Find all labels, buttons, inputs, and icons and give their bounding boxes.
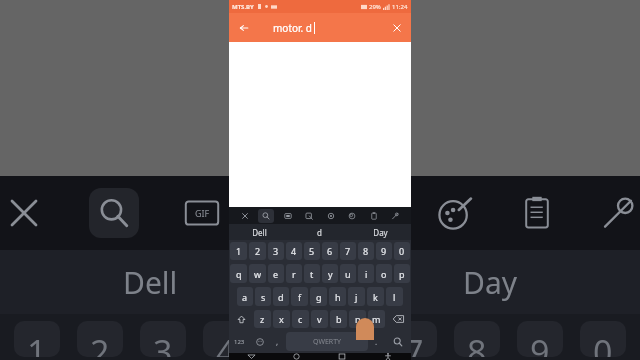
- staticText: Day: [463, 262, 518, 303]
- staticText: 8: [363, 245, 369, 257]
- button[interactable]: Dell: [229, 224, 289, 240]
- button[interactable]: 1: [230, 242, 247, 260]
- staticText: 9: [530, 329, 550, 357]
- staticText: 1: [27, 329, 47, 357]
- button[interactable]: t: [304, 264, 320, 283]
- staticText: GIF: [195, 207, 210, 219]
- staticText: .: [375, 336, 378, 347]
- button[interactable]: b: [330, 310, 347, 328]
- staticText: q: [236, 268, 242, 280]
- button[interactable]: i: [358, 264, 374, 283]
- staticText: 7: [345, 245, 351, 257]
- button[interactable]: x: [273, 310, 290, 328]
- button[interactable]: Search: [258, 209, 274, 223]
- staticText: w: [254, 268, 262, 280]
- button[interactable]: 8: [358, 242, 374, 260]
- button[interactable]: Translate: [301, 209, 317, 223]
- staticText: z: [260, 313, 265, 325]
- staticText: 5: [309, 245, 315, 257]
- staticText: c: [298, 313, 303, 325]
- button[interactable]: Emoji: [323, 209, 339, 223]
- button[interactable]: .: [370, 332, 383, 351]
- button[interactable]: n: [349, 310, 366, 328]
- button[interactable]: Clear: [382, 13, 411, 42]
- staticText: g: [316, 291, 322, 303]
- button[interactable]: Back: [229, 353, 274, 360]
- button[interactable]: 123: [230, 332, 249, 351]
- button[interactable]: y: [322, 264, 338, 283]
- button[interactable]: ,: [271, 332, 284, 351]
- button[interactable]: Emoji: [251, 332, 269, 351]
- button[interactable]: QWERTY: [286, 332, 368, 351]
- button[interactable]: Clipboard: [366, 209, 382, 223]
- button[interactable]: v: [311, 310, 328, 328]
- button[interactable]: d: [273, 287, 289, 306]
- staticText: 29%: [369, 3, 381, 11]
- button[interactable]: 7: [340, 242, 356, 260]
- button[interactable]: q: [230, 264, 247, 283]
- button[interactable]: m: [368, 310, 385, 328]
- staticText: MTS.BY: [232, 3, 254, 11]
- button[interactable]: l: [386, 287, 403, 306]
- staticText: k: [373, 291, 378, 303]
- staticText: 2: [255, 245, 261, 257]
- button[interactable]: c: [292, 310, 309, 328]
- staticText: h: [335, 291, 341, 303]
- button[interactable]: e: [268, 264, 284, 283]
- button[interactable]: Accessibility: [365, 353, 411, 360]
- staticText: Dell: [123, 262, 178, 303]
- staticText: 3: [273, 245, 279, 257]
- button[interactable]: 3: [268, 242, 284, 260]
- staticText: l: [393, 291, 396, 303]
- button[interactable]: Stickers: [280, 209, 296, 223]
- button[interactable]: Theme: [344, 209, 360, 223]
- button[interactable]: Home: [274, 353, 319, 360]
- button[interactable]: s: [255, 287, 271, 306]
- button[interactable]: 2: [249, 242, 266, 260]
- button[interactable]: a: [237, 287, 253, 306]
- button[interactable]: g: [310, 287, 327, 306]
- button[interactable]: 9: [376, 242, 392, 260]
- staticText: u: [345, 268, 351, 280]
- staticText: 11:24: [392, 3, 408, 11]
- button[interactable]: o: [376, 264, 392, 283]
- button[interactable]: k: [367, 287, 384, 306]
- button[interactable]: 6: [322, 242, 338, 260]
- staticText: p: [399, 268, 405, 280]
- staticText: Day: [373, 227, 388, 238]
- button[interactable]: u: [340, 264, 356, 283]
- button[interactable]: Search: [385, 332, 410, 351]
- button[interactable]: d: [289, 224, 350, 240]
- button[interactable]: f: [291, 287, 308, 306]
- staticText: 9: [381, 245, 387, 257]
- staticText: 7: [404, 329, 424, 357]
- staticText: b: [336, 313, 342, 325]
- button[interactable]: Back: [229, 13, 258, 42]
- button[interactable]: Backspace: [387, 310, 410, 328]
- button[interactable]: r: [286, 264, 302, 283]
- staticText: t: [310, 268, 314, 280]
- button[interactable]: j: [348, 287, 365, 306]
- button[interactable]: Shift: [230, 310, 252, 328]
- staticText: j: [355, 291, 358, 303]
- staticText: 2: [90, 329, 110, 357]
- staticText: n: [355, 313, 361, 325]
- staticText: 4: [216, 329, 236, 357]
- staticText: ,: [276, 336, 279, 347]
- button[interactable]: 4: [286, 242, 302, 260]
- button[interactable]: p: [394, 264, 410, 283]
- button[interactable]: w: [249, 264, 266, 283]
- staticText: s: [261, 291, 266, 303]
- button[interactable]: h: [329, 287, 346, 306]
- button[interactable]: 0: [394, 242, 410, 260]
- staticText: 6: [327, 245, 333, 257]
- staticText: x: [279, 313, 284, 325]
- staticText: y: [328, 268, 333, 280]
- button[interactable]: Pin: [387, 209, 403, 223]
- staticText: QWERTY: [313, 337, 342, 347]
- button[interactable]: Day: [350, 224, 411, 240]
- button[interactable]: 5: [304, 242, 320, 260]
- button[interactable]: z: [254, 310, 271, 328]
- button[interactable]: Recents: [319, 353, 365, 360]
- button[interactable]: Close: [237, 209, 253, 223]
